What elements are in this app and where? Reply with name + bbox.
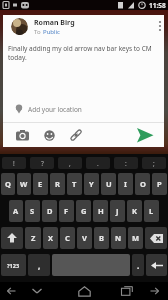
button[interactable]: Y [84,173,99,195]
staticText: E [38,179,43,189]
staticText: F [64,206,69,216]
button[interactable] [7,287,16,295]
staticText: Add your location [28,105,82,114]
staticText: To [34,28,43,36]
button[interactable]: I [118,173,133,195]
staticText: P [157,179,162,189]
button[interactable]: N [111,227,126,249]
button[interactable] [11,18,28,35]
button[interactable]: , [58,157,82,169]
button[interactable] [1,227,23,249]
button[interactable] [146,254,167,276]
button[interactable]: ! [2,157,26,169]
staticText: V [82,233,87,243]
staticText: Finally adding my old arrow nav bar keys… [8,44,152,53]
button[interactable]: L [144,200,159,222]
button[interactable]: M [128,227,143,249]
staticText: today. [8,53,27,62]
button[interactable] [70,129,82,141]
staticText: , [69,159,71,168]
button[interactable] [44,130,55,141]
button[interactable]: : [114,157,138,169]
button[interactable] [137,128,154,143]
button[interactable]: ?123 [1,254,26,276]
button[interactable] [150,287,159,295]
staticText: ?123 [7,262,20,269]
button[interactable]: K [127,200,142,222]
button[interactable]: J [110,200,125,222]
staticText: : [125,159,127,168]
staticText: , [38,260,41,271]
staticText: S [30,206,35,216]
button[interactable] [145,227,167,249]
staticText: C [65,233,70,243]
staticText: D [47,206,53,216]
staticText: R [55,179,60,189]
button[interactable] [32,288,42,294]
staticText: ; [153,159,155,168]
staticText: O [140,179,146,189]
button[interactable]: P [152,173,167,195]
staticText: Roman Birg [34,18,75,28]
staticText: M [132,233,140,243]
staticText: H [98,206,104,216]
button[interactable]: G [76,200,91,222]
button[interactable]: X [43,227,58,249]
button[interactable]: , [28,254,50,276]
button[interactable]: A [9,200,23,222]
button[interactable]: . [132,254,144,276]
button[interactable]: Public [43,28,61,36]
button[interactable]: Add your location [3,104,164,122]
button[interactable]: O [135,173,150,195]
button[interactable] [78,286,91,297]
staticText: Z [31,233,36,243]
staticText: 11:58 [149,1,166,10]
staticText: . [97,159,99,168]
staticText: N [115,233,122,243]
staticText: K [132,206,137,216]
button[interactable]: D [42,200,57,222]
staticText: J [116,206,119,216]
button[interactable]: ; [142,157,166,169]
button[interactable]: . [86,157,110,169]
staticText: Y [89,179,94,189]
staticText: . [137,260,140,271]
button[interactable]: ? [30,157,54,169]
staticText: T [72,179,77,189]
button[interactable]: T [67,173,82,195]
button[interactable]: Z [25,227,41,249]
button[interactable]: U [101,173,116,195]
staticText: W [20,179,28,189]
button[interactable]: S [25,200,40,222]
button[interactable]: H [93,200,108,222]
staticText: ! [13,159,15,168]
staticText: B [99,233,104,243]
button[interactable]: F [59,200,74,222]
staticText: I [124,179,127,189]
staticText: A [13,206,19,216]
staticText: Q [5,179,11,189]
button[interactable] [121,286,133,296]
button[interactable] [154,18,162,32]
button[interactable] [16,130,29,141]
button[interactable]: B [94,227,109,249]
button[interactable]: C [60,227,75,249]
staticText: ? [41,159,44,168]
button[interactable]: Q [1,173,15,195]
button[interactable]: W [17,173,31,195]
button[interactable]: R [50,173,65,195]
staticText: X [48,233,54,243]
button[interactable]: V [77,227,92,249]
staticText: L [149,206,154,216]
staticText: G [81,206,87,216]
staticText: U [106,179,112,189]
button[interactable]: E [33,173,48,195]
